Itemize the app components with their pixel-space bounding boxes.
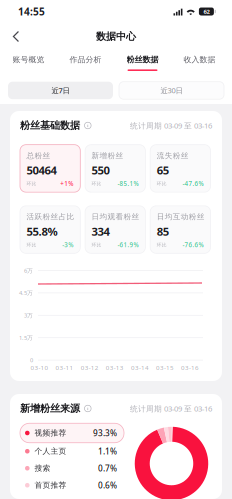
- staticText: 6万: [24, 267, 33, 274]
- button[interactable]: 近7日: [8, 82, 113, 99]
- staticText: 首页推荐: [35, 480, 67, 490]
- staticText: 环比: [92, 181, 102, 187]
- staticText: 新增粉丝来源: [20, 402, 80, 415]
- staticText: 03-12: [81, 363, 99, 372]
- staticText: 55.8%: [26, 224, 57, 239]
- button[interactable]: 日均互动粉丝: [150, 206, 210, 253]
- staticText: 日均互动粉丝: [157, 212, 205, 222]
- staticText: 14:55: [18, 5, 45, 18]
- staticText: 1.1%: [98, 446, 117, 457]
- staticText: 搜索: [35, 463, 51, 473]
- button[interactable]: 视频推荐: [20, 423, 124, 443]
- staticText: 0: [30, 356, 33, 364]
- staticText: 视频推荐: [35, 428, 67, 438]
- staticText: 550: [92, 162, 110, 178]
- button[interactable]: 作品分析: [57, 50, 114, 72]
- button[interactable]: 粉丝数据: [114, 50, 171, 72]
- staticText: 活跃粉丝占比: [26, 212, 74, 222]
- button[interactable]: 账号概览: [0, 50, 57, 72]
- staticText: 50464: [26, 162, 56, 178]
- button[interactable]: 活跃粉丝占比: [20, 206, 80, 253]
- staticText: -76.6%: [182, 241, 203, 249]
- button[interactable]: 近30日: [119, 82, 224, 99]
- staticText: 个人主页: [35, 446, 67, 456]
- button[interactable]: 日均观看粉丝: [85, 206, 145, 253]
- staticText: 近7日: [51, 85, 69, 96]
- staticText: 03-10: [30, 363, 48, 372]
- staticText: 03-11: [56, 363, 74, 372]
- staticText: 85: [157, 224, 169, 239]
- staticText: 65: [157, 162, 169, 178]
- staticText: 总粉丝: [26, 151, 50, 160]
- staticText: 环比: [26, 242, 36, 248]
- button[interactable]: 返回: [5, 25, 27, 47]
- staticText: 作品分析: [69, 55, 101, 65]
- staticText: 环比: [92, 242, 102, 248]
- staticText: 统计周期 03-09 至 03-16: [130, 120, 212, 131]
- staticText: 93.3%: [93, 427, 117, 439]
- staticText: 334: [92, 224, 110, 239]
- button[interactable]: 收入数据: [171, 50, 228, 72]
- button[interactable]: 流失粉丝: [150, 145, 210, 192]
- button[interactable]: 搜索: [20, 460, 124, 477]
- button[interactable]: 首页推荐: [20, 477, 124, 494]
- staticText: 03-16: [181, 363, 199, 372]
- staticText: 账号概览: [12, 55, 44, 65]
- staticText: 1.5万: [19, 334, 33, 342]
- staticText: 0.6%: [98, 480, 117, 491]
- staticText: 新增粉丝: [92, 151, 124, 160]
- staticText: 收入数据: [183, 55, 215, 65]
- staticText: -3%: [62, 241, 73, 249]
- button[interactable]: 个人主页: [20, 443, 124, 460]
- staticText: 环比: [26, 181, 36, 187]
- staticText: 3万: [24, 311, 33, 319]
- staticText: 统计周期 03-09 至 03-16: [130, 403, 212, 414]
- staticText: 03-14: [131, 363, 149, 372]
- staticText: 03-15: [156, 363, 174, 372]
- button[interactable]: 总粉丝: [20, 145, 80, 192]
- staticText: -47.6%: [182, 179, 203, 188]
- staticText: 近30日: [160, 85, 182, 96]
- staticText: 环比: [157, 242, 167, 248]
- staticText: 日均观看粉丝: [92, 212, 140, 222]
- staticText: 环比: [157, 181, 167, 187]
- staticText: 粉丝数据: [126, 55, 158, 65]
- staticText: 62: [203, 7, 209, 15]
- staticText: +1%: [60, 179, 73, 188]
- staticText: 03-13: [106, 363, 124, 372]
- staticText: -85.1%: [117, 179, 138, 188]
- staticText: 数据中心: [96, 30, 136, 43]
- staticText: 粉丝基础数据: [20, 119, 80, 132]
- staticText: -61.9%: [117, 241, 138, 249]
- staticText: 流失粉丝: [157, 151, 189, 160]
- staticText: 4.5万: [19, 289, 33, 297]
- staticText: 0.7%: [98, 463, 117, 474]
- button[interactable]: 新增粉丝: [85, 145, 145, 192]
